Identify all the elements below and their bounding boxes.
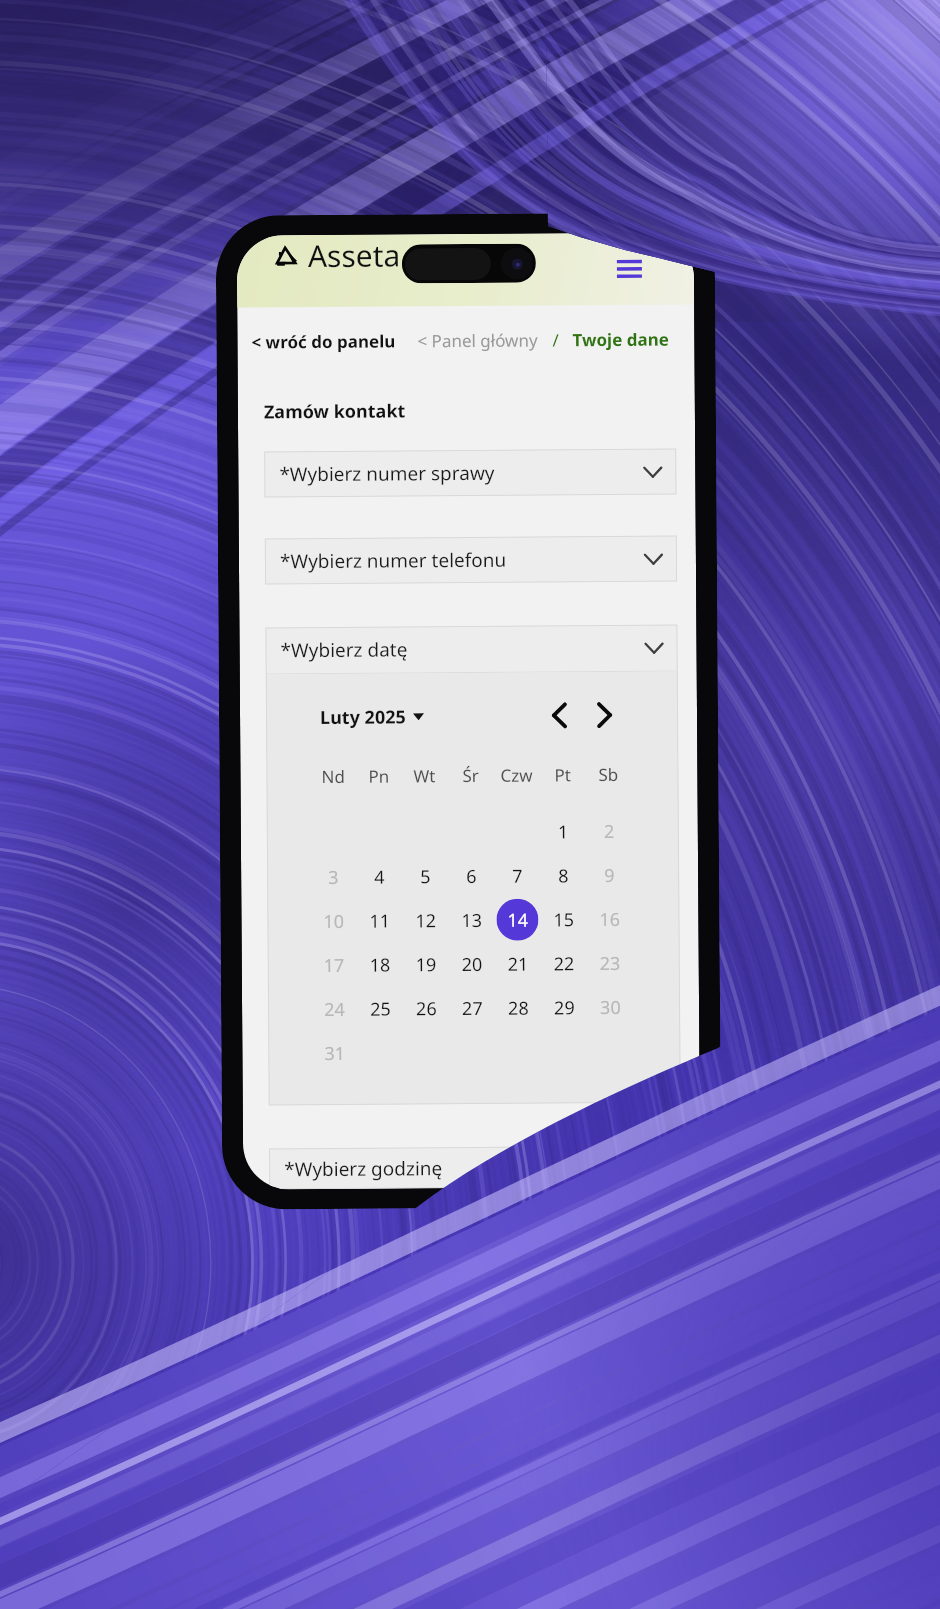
button[interactable]: 10 <box>311 899 357 943</box>
staticText: 25 <box>370 996 391 1022</box>
button[interactable]: < wróć do panelu <box>251 329 395 353</box>
button[interactable]: 6 <box>448 854 494 898</box>
staticText: < wróć do panelu <box>251 329 395 353</box>
button[interactable]: 26 <box>403 986 449 1030</box>
staticText: / <box>552 328 559 351</box>
button[interactable]: 15 <box>540 897 587 941</box>
staticText: Asseta <box>308 234 401 276</box>
staticText: Czw <box>500 763 534 787</box>
staticText: 11 <box>369 909 391 934</box>
button[interactable]: 21 <box>495 941 541 986</box>
staticText: 3 <box>328 865 339 890</box>
staticText: 14 <box>507 908 529 933</box>
button[interactable]: *Wybierz numer telefonu <box>265 535 677 584</box>
staticText: Twoje dane <box>572 328 669 351</box>
button[interactable]: 11 <box>356 898 403 943</box>
staticText: 8 <box>558 863 569 888</box>
button[interactable]: 7 <box>494 853 540 898</box>
staticText: *Wybierz godzinę <box>284 1155 443 1182</box>
button[interactable]: 17 <box>312 943 357 987</box>
button[interactable]: 14 <box>496 898 539 941</box>
staticText: 18 <box>370 952 391 978</box>
staticText: 31 <box>324 1041 345 1066</box>
button[interactable]: 12 <box>402 898 449 942</box>
button[interactable]: 30 <box>587 985 633 1029</box>
staticText: Luty 2025 <box>320 704 406 730</box>
button[interactable]: 8 <box>540 853 586 897</box>
button[interactable]: 5 <box>402 854 448 898</box>
button[interactable]: 31 <box>312 1031 357 1075</box>
staticText: 10 <box>323 909 345 934</box>
button[interactable]: 18 <box>357 942 403 987</box>
button[interactable]: Menu <box>612 252 646 286</box>
button[interactable]: 24 <box>312 987 357 1031</box>
staticText: 24 <box>324 997 345 1022</box>
staticText: 15 <box>553 907 575 932</box>
staticText: 17 <box>324 953 345 978</box>
staticText: 22 <box>554 951 575 976</box>
staticText: 20 <box>462 952 483 977</box>
staticText: Zamów kontakt <box>264 398 406 424</box>
button[interactable]: 29 <box>541 985 587 1029</box>
button[interactable]: 20 <box>449 942 495 986</box>
staticText: 30 <box>600 995 621 1020</box>
staticText: 7 <box>512 864 523 889</box>
staticText: Wt <box>413 764 436 787</box>
staticText: 19 <box>416 952 437 977</box>
button[interactable]: Luty 2025 <box>320 704 424 730</box>
button[interactable]: 2 <box>586 809 632 853</box>
staticText: Sb <box>598 763 619 786</box>
button[interactable]: Poprzedni miesiąc <box>541 698 575 732</box>
button[interactable]: *Wybierz numer sprawy <box>264 448 676 497</box>
button[interactable]: 1 <box>540 809 586 853</box>
button[interactable]: *Wybierz datę <box>265 624 678 673</box>
staticText: 6 <box>466 864 477 889</box>
staticText: 9 <box>604 863 615 888</box>
staticText: < Panel główny <box>417 328 538 352</box>
staticText: 28 <box>508 996 529 1021</box>
staticText: *Wybierz numer telefonu <box>280 547 507 574</box>
button[interactable]: 19 <box>403 942 449 986</box>
staticText: Pn <box>368 765 390 788</box>
button[interactable]: 13 <box>448 898 495 942</box>
button[interactable]: 3 <box>311 855 356 899</box>
staticText: 12 <box>415 908 437 933</box>
button[interactable]: 22 <box>541 941 587 985</box>
button[interactable]: 4 <box>356 854 402 899</box>
staticText: 4 <box>374 865 385 890</box>
button[interactable]: 9 <box>586 853 632 897</box>
staticText: 21 <box>508 952 529 977</box>
staticText: 26 <box>416 996 437 1021</box>
staticText: Śr <box>462 764 480 787</box>
staticText: *Wybierz numer sprawy <box>279 460 495 487</box>
staticText: 2 <box>604 819 615 844</box>
button[interactable]: 16 <box>586 897 633 941</box>
button[interactable]: 27 <box>449 986 495 1030</box>
staticText: 5 <box>420 864 431 889</box>
button[interactable]: 28 <box>495 985 541 1030</box>
button[interactable]: Następny miesiąc <box>588 698 622 732</box>
staticText: 1 <box>558 819 569 844</box>
staticText: 27 <box>462 996 483 1021</box>
staticText: 13 <box>461 908 483 933</box>
button[interactable]: *Wybierz godzinę <box>269 1145 681 1189</box>
button[interactable]: 25 <box>357 986 403 1031</box>
staticText: *Wybierz datę <box>280 636 408 663</box>
button[interactable]: 23 <box>587 941 633 985</box>
staticText: 29 <box>554 995 575 1020</box>
staticText: 23 <box>600 951 621 976</box>
staticText: 16 <box>599 907 621 932</box>
staticText: Pt <box>554 763 572 786</box>
staticText: Nd <box>321 765 346 788</box>
